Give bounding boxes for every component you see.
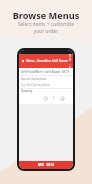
staticText: $8.19 [69, 54, 71, 68]
staticText: Grill Food/Beer's Grill Board [21, 70, 61, 74]
button[interactable]: Increase quantity [60, 96, 65, 101]
staticText: Select items + customize your order [0, 21, 92, 35]
staticText: Menu - Brandless Grill House [26, 59, 69, 63]
staticText: Browse Menus [0, 9, 92, 22]
staticText: ADD $8.19 [38, 163, 54, 167]
staticText: Quantity [21, 89, 33, 93]
other: Close [21, 59, 25, 63]
button[interactable]: Decrease quantity [43, 96, 48, 101]
staticText: 1 [53, 96, 55, 100]
staticText: E.g. No Cheese please [21, 83, 50, 87]
button[interactable]: ADD $8.19 [19, 161, 73, 169]
button[interactable]: Close [19, 54, 73, 68]
staticText: $8.19 [62, 70, 70, 74]
staticText: Special instructions [21, 77, 47, 81]
